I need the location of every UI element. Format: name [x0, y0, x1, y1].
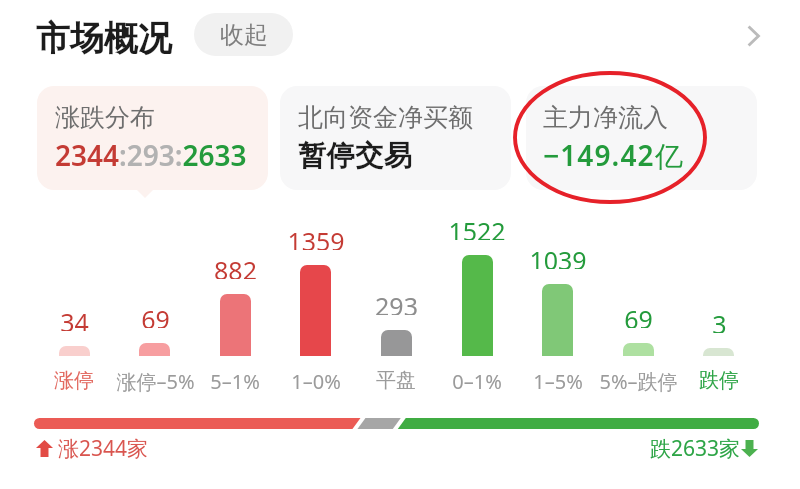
staticText: 34 [60, 305, 89, 331]
staticText: 市场概况 [36, 17, 172, 60]
staticText: 主力净流入 [543, 102, 668, 133]
button[interactable] [37, 86, 268, 190]
staticText: 5–1% [210, 368, 260, 395]
staticText: 1359 [287, 224, 345, 250]
staticText: 3 [712, 307, 727, 333]
staticText: 涨停–5% [116, 368, 195, 395]
staticText: 0–1% [452, 368, 502, 395]
button[interactable]: 收起 [194, 13, 293, 56]
staticText: 跌2633家 [650, 434, 741, 463]
staticText: 2344:293:2633 [55, 136, 247, 174]
staticText: 5%–跌停 [599, 368, 678, 395]
staticText: 293 [375, 289, 418, 315]
staticText: 暂停交易 [298, 138, 413, 173]
staticText: −149.42亿 [543, 136, 684, 174]
staticText: 收起 [220, 20, 268, 50]
staticText: 涨跌分布 [55, 102, 155, 133]
staticText: 平盘 [376, 368, 416, 393]
staticText: 涨2344家 [58, 434, 149, 463]
staticText: 1–0% [291, 368, 341, 395]
staticText: 北向资金净买额 [298, 102, 473, 133]
button[interactable]: 展开更多 [725, 8, 781, 64]
staticText: 1522 [448, 214, 506, 240]
staticText: 1–5% [533, 368, 583, 395]
staticText: 1039 [529, 243, 587, 269]
staticText: 跌停 [699, 368, 739, 393]
button[interactable]: 北向资金净买额 [280, 86, 511, 190]
staticText: 69 [624, 302, 653, 328]
staticText: 涨停 [54, 368, 94, 393]
button[interactable]: 主力净流入 [526, 86, 757, 190]
staticText: 882 [214, 253, 257, 279]
staticText: 69 [141, 302, 170, 328]
